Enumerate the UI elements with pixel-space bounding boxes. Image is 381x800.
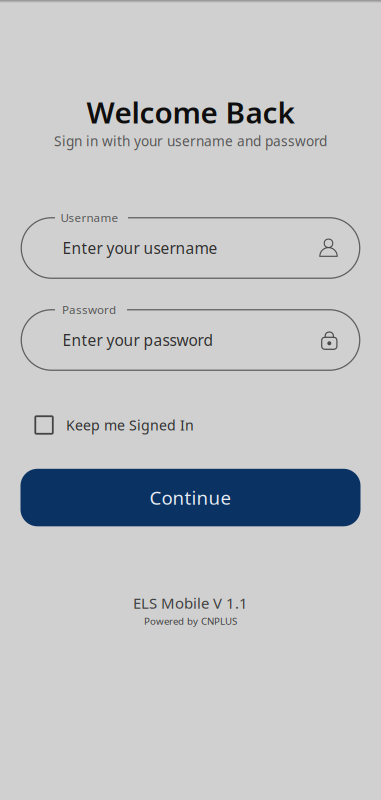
button[interactable]: Password: [20, 309, 360, 371]
staticText: Sign in with your username and password: [54, 132, 327, 150]
staticText: Password: [62, 302, 116, 317]
staticText: Continue: [149, 485, 231, 510]
staticText: Powered by CNPLUS: [144, 614, 237, 628]
staticText: ELS Mobile V 1.1: [133, 593, 248, 613]
button[interactable]: Username: [20, 217, 360, 279]
button[interactable]: Continue: [20, 469, 360, 526]
staticText: Welcome Back: [86, 92, 294, 132]
staticText: Enter your username: [62, 237, 217, 259]
button[interactable]: Keep me Signed In: [35, 412, 235, 438]
staticText: Username: [60, 210, 118, 225]
staticText: Enter your password: [62, 329, 213, 351]
staticText: Keep me Signed In: [66, 415, 194, 435]
